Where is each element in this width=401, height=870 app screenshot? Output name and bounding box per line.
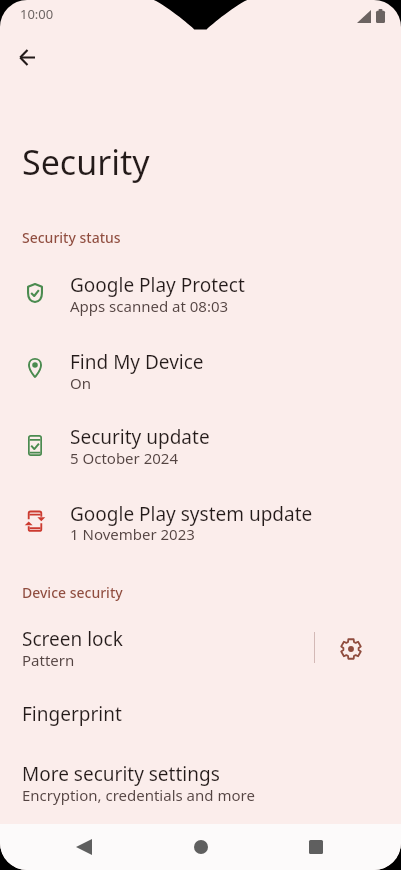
staticText: More security settings [22,761,220,787]
staticText: Security update [70,424,210,450]
staticText: Device security [22,583,123,602]
staticText: Google Play system update [70,501,313,527]
button[interactable]: Navigate up [9,39,46,76]
button[interactable] [0,617,310,679]
staticText: Security [22,139,150,185]
staticText: On [70,373,91,393]
staticText: Encryption, credentials and more [22,785,255,805]
button[interactable]: Google Play Protect [0,248,401,310]
staticText: Pattern [22,650,75,670]
button[interactable]: More security settings [0,749,401,807]
button[interactable]: Find My Device [0,324,401,386]
button[interactable]: Screen lock settings [320,617,382,679]
staticText: Fingerprint [22,701,122,727]
button[interactable]: Fingerprint [0,688,401,728]
staticText: Security status [22,228,121,247]
staticText: Find My Device [70,349,204,375]
button[interactable]: Google Play system update [0,477,401,539]
button[interactable]: Home [177,824,224,870]
button[interactable]: Security update [0,400,401,462]
staticText: 1 November 2023 [70,524,195,544]
staticText: Google Play Protect [70,272,245,298]
staticText: 10:00 [20,5,54,23]
button[interactable]: Recent apps [292,824,339,870]
staticText: Apps scanned at 08:03 [70,296,229,316]
button[interactable]: Back [60,824,107,870]
staticText: 5 October 2024 [70,448,178,468]
staticText: Screen lock [22,626,123,652]
